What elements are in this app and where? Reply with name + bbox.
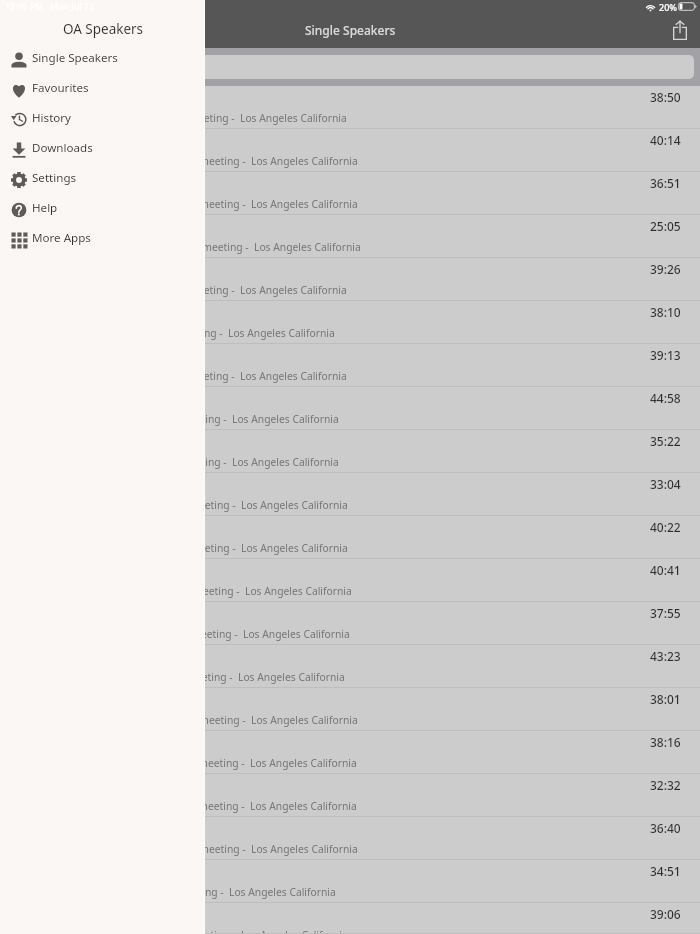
staticText: 2019 OA meeting - Los Angeles California <box>145 111 347 125</box>
staticText: 2019 OA meeting - Los Angeles California <box>133 326 335 340</box>
staticText: Theresa S. <box>10 218 69 234</box>
staticText: Settings <box>32 170 77 186</box>
button[interactable]: Search <box>6 55 694 79</box>
staticText: Dolores B. <box>10 89 69 105</box>
button[interactable]: Robert W. <box>0 301 700 344</box>
staticText: 2019 OA meeting - Los Angeles California <box>145 283 347 297</box>
staticText: 38:01 <box>650 691 681 707</box>
button[interactable]: Carol T. <box>0 344 700 387</box>
button[interactable]: Gina R. <box>0 172 700 215</box>
staticText: Single Speakers <box>32 50 118 66</box>
button[interactable]: Single Speakers <box>0 45 204 75</box>
staticText: 2019 OA meeting - Los Angeles California <box>137 412 339 426</box>
button[interactable]: Paul C. <box>0 688 700 731</box>
staticText: 32:32 <box>650 777 681 793</box>
staticText: 20% <box>659 1 677 13</box>
staticText: 34:51 <box>650 863 681 879</box>
staticText: 39:13 <box>650 347 681 363</box>
button[interactable]: Kathy N. <box>0 731 700 774</box>
staticText: 2019 OA meeting - Los Angeles California <box>143 670 345 684</box>
staticText: 39:06 <box>650 906 681 922</box>
staticText: 2019 OA meeting - Los Angeles California <box>134 885 336 899</box>
staticText: 40:14 <box>650 132 681 148</box>
button[interactable]: Bill V. <box>0 903 700 934</box>
staticText: Favourites <box>32 80 89 96</box>
button[interactable]: Share <box>663 13 697 47</box>
staticText: 2019 OA meeting - Los Angeles California <box>155 799 357 813</box>
button[interactable]: Theresa S. <box>0 215 700 258</box>
staticText: 2019 OA meeting - Los Angeles California <box>159 240 361 254</box>
staticText: 38:10 <box>650 304 681 320</box>
staticText: 2019 OA meeting - Los Angeles California <box>156 154 358 168</box>
staticText: 33:04 <box>650 476 681 492</box>
staticText: 2019 OA meeting - Los Angeles California <box>148 627 350 641</box>
button[interactable]: Lisa H. <box>0 602 700 645</box>
button[interactable]: More Apps <box>0 225 204 255</box>
staticText: Gina R. <box>10 175 51 191</box>
button[interactable]: Settings <box>0 165 204 195</box>
staticText: 35:22 <box>650 433 681 449</box>
staticText: 36:51 <box>650 175 681 191</box>
staticText: 25:05 <box>650 218 681 234</box>
staticText: 37:55 <box>650 605 681 621</box>
staticText: 2019 OA meeting - Los Angeles California <box>145 369 347 383</box>
button[interactable]: Ann K. <box>0 258 700 301</box>
button[interactable]: Michael O. <box>0 559 700 602</box>
staticText: 43:23 <box>650 648 681 664</box>
button[interactable]: Phil D. <box>0 387 700 430</box>
staticText: 40:22 <box>650 519 681 535</box>
staticText: 38:16 <box>650 734 681 750</box>
button[interactable]: Maureen Y. <box>0 817 700 860</box>
staticText: 2019 OA meeting - Los Angeles California <box>156 713 358 727</box>
staticText: 40:41 <box>650 562 681 578</box>
staticText: 2019 OA meeting - Los Angeles California <box>146 928 348 934</box>
button[interactable]: Joan E. <box>0 860 700 903</box>
staticText: 38:50 <box>650 89 681 105</box>
button[interactable]: Steve A. <box>0 774 700 817</box>
staticText: More Apps <box>32 230 91 246</box>
staticText: 36:40 <box>650 820 681 836</box>
staticText: 2019 OA meeting - Los Angeles California <box>156 197 358 211</box>
staticText: 2019 OA meeting - Los Angeles California <box>150 584 352 598</box>
button[interactable]: Favourites <box>0 75 204 105</box>
button[interactable]: Jean P. <box>0 473 700 516</box>
staticText: 2019 OA meeting - Los Angeles California <box>156 842 358 856</box>
button[interactable]: Dolores B. <box>0 86 700 129</box>
button[interactable]: Downloads <box>0 135 204 165</box>
staticText: 2019 OA meeting - Los Angeles California <box>146 541 348 555</box>
button[interactable]: Sandra L. <box>0 516 700 559</box>
staticText: 2019 OA meeting - Los Angeles California <box>137 455 339 469</box>
staticText: 39:26 <box>650 261 681 277</box>
staticText: 2019 OA meeting - Los Angeles California <box>155 756 357 770</box>
staticText: Marty M. <box>10 132 62 148</box>
button[interactable]: Donna F. <box>0 645 700 688</box>
staticText: OA Speakers <box>1 20 205 38</box>
staticText: 44:58 <box>650 390 681 406</box>
button[interactable]: Help <box>0 195 204 225</box>
staticText: Help <box>32 200 58 216</box>
staticText: History <box>32 110 72 126</box>
staticText: 12:05 PM Mon Jul 22 <box>5 1 95 13</box>
staticText: Downloads <box>32 140 93 156</box>
button[interactable]: History <box>0 105 204 135</box>
staticText: 2019 OA meeting - Los Angeles California <box>146 498 348 512</box>
button[interactable]: Marty M. <box>0 129 700 172</box>
staticText: Single Speakers <box>305 22 396 38</box>
button[interactable]: Nancy G. <box>0 430 700 473</box>
